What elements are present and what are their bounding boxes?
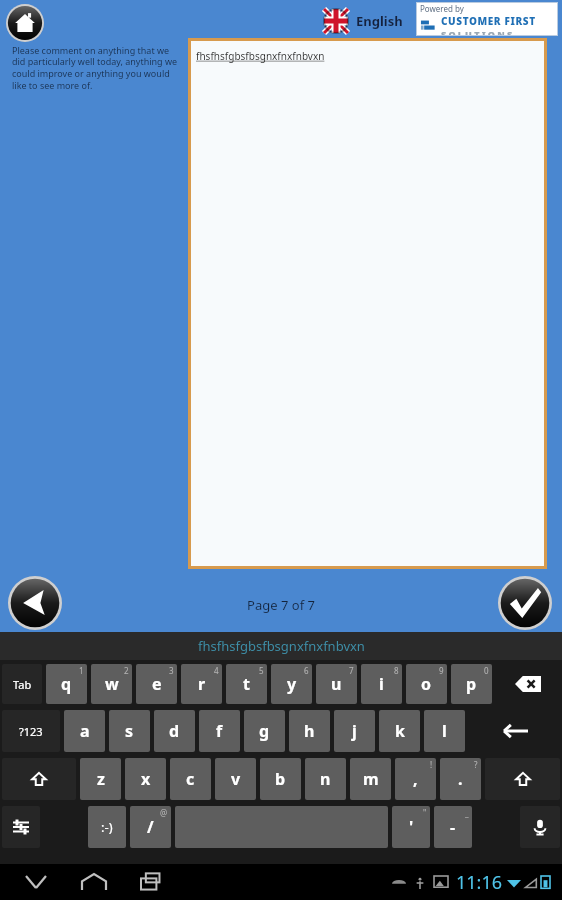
staticText: , [413, 768, 418, 790]
staticText: @ [160, 807, 168, 818]
button[interactable]: Backspace [494, 662, 562, 706]
button[interactable]: v [215, 758, 256, 800]
button[interactable]: Shift [485, 758, 560, 800]
staticText: b [275, 768, 286, 790]
button[interactable]: Tab [2, 664, 42, 704]
button[interactable]: h [289, 710, 330, 752]
button[interactable]: d [154, 710, 195, 752]
staticText: m [363, 768, 379, 790]
staticText: ! [430, 759, 433, 770]
staticText: Powered by [420, 3, 464, 14]
button[interactable]: q [46, 664, 87, 704]
button[interactable]: English [324, 8, 403, 34]
staticText: Please comment on anything that we did p… [12, 44, 182, 92]
staticText: z [97, 768, 105, 790]
staticText: v [231, 768, 241, 790]
staticText: 11:16 [456, 870, 503, 895]
button[interactable]: :-) [88, 806, 126, 848]
button[interactable]: x [125, 758, 166, 800]
button[interactable]: Confirm [498, 576, 552, 630]
staticText: c [186, 768, 195, 790]
button[interactable]: , [395, 758, 436, 800]
button[interactable]: fhsfhsfgbsfbsgnxfnxfnbvxn [191, 41, 544, 566]
staticText: - [450, 816, 456, 838]
staticText: SOLUTIONS [441, 28, 515, 36]
button[interactable]: Voice input [520, 806, 560, 848]
button[interactable]: m [350, 758, 391, 800]
staticText: a [80, 720, 90, 742]
staticText: 8 [394, 665, 399, 676]
button[interactable]: Powered by [420, 3, 558, 36]
button[interactable]: p [451, 664, 492, 704]
staticText: r [198, 673, 206, 695]
staticText: ' [409, 816, 414, 838]
button[interactable]: o [406, 664, 447, 704]
button[interactable]: ?123 [2, 710, 60, 752]
staticText: Tab [13, 677, 32, 692]
button[interactable]: n [305, 758, 346, 800]
staticText: h [304, 720, 315, 742]
button[interactable]: u [316, 664, 357, 704]
button[interactable]: Recent apps [130, 864, 174, 900]
button[interactable]: w [91, 664, 132, 704]
staticText: p [466, 673, 477, 695]
staticText: English [356, 12, 403, 30]
button[interactable]: k [379, 710, 420, 752]
staticText: fhsfhsfgbsfbsgnxfnxfnbvxn [198, 637, 365, 655]
staticText: " [423, 807, 427, 818]
staticText: y [287, 673, 297, 695]
button[interactable]: . [440, 758, 481, 800]
button[interactable]: Enter [467, 708, 562, 754]
button[interactable]: Settings [2, 806, 40, 848]
button[interactable]: e [136, 664, 177, 704]
button[interactable]: b [260, 758, 301, 800]
staticText: Page 7 of 7 [0, 596, 562, 614]
button[interactable]: c [170, 758, 211, 800]
button[interactable]: i [361, 664, 402, 704]
button[interactable]: Back [14, 864, 58, 900]
button[interactable]: y [271, 664, 312, 704]
button[interactable]: Back [8, 576, 62, 630]
staticText: ?123 [19, 724, 43, 739]
button[interactable]: Home [6, 4, 44, 42]
staticText: ? [474, 759, 478, 770]
staticText: 6 [304, 665, 309, 676]
staticText: s [125, 720, 134, 742]
button[interactable]: t [226, 664, 267, 704]
staticText: 9 [439, 665, 444, 676]
button[interactable]: r [181, 664, 222, 704]
staticText: 2 [124, 665, 129, 676]
staticText: . [458, 768, 463, 790]
staticText: x [141, 768, 151, 790]
staticText: fhsfhsfgbsfbsgnxfnxfnbvxn [196, 49, 325, 63]
staticText: n [320, 768, 331, 790]
staticText: 5 [259, 665, 264, 676]
button[interactable]: fhsfhsfgbsfbsgnxfnxfnbvxn [0, 632, 562, 660]
staticText: q [61, 673, 72, 695]
staticText: e [152, 673, 162, 695]
button[interactable]: Home [72, 864, 116, 900]
staticText: / [147, 816, 154, 838]
staticText: g [259, 720, 270, 742]
staticText: 3 [169, 665, 174, 676]
staticText: _ [465, 807, 469, 818]
button[interactable]: g [244, 710, 285, 752]
staticText: i [379, 673, 384, 695]
button[interactable]: - [434, 806, 472, 848]
staticText: d [169, 720, 180, 742]
staticText: k [395, 720, 405, 742]
button[interactable]: / [130, 806, 171, 848]
staticText: 4 [214, 665, 219, 676]
button[interactable]: Shift [2, 758, 76, 800]
button[interactable]: a [64, 710, 105, 752]
button[interactable]: f [199, 710, 240, 752]
button[interactable]: s [109, 710, 150, 752]
staticText: f [216, 720, 223, 742]
button[interactable]: l [424, 710, 465, 752]
staticText: o [421, 673, 432, 695]
button[interactable]: ' [392, 806, 430, 848]
button[interactable]: j [334, 710, 375, 752]
staticText: u [331, 673, 342, 695]
button[interactable]: z [80, 758, 121, 800]
